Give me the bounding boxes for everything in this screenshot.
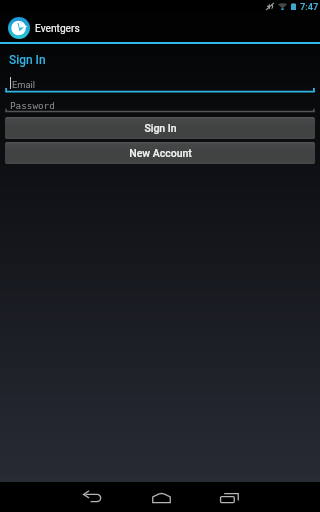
staticText: Password [10,100,55,111]
button[interactable]: Sign In [5,117,315,139]
staticText: Sign In [144,122,177,134]
button[interactable]: Password input [5,96,320,112]
staticText: Sign In [9,53,46,67]
button[interactable]: Home [139,482,183,512]
button[interactable]: New Account [5,142,315,164]
staticText: Eventgers [35,23,80,35]
staticText: 7:47 [300,1,319,12]
button[interactable]: Recent apps [207,482,251,512]
staticText: Email [12,79,36,90]
staticText: New Account [129,147,192,159]
button[interactable]: Back [70,482,114,512]
button[interactable]: Email input [5,74,320,92]
